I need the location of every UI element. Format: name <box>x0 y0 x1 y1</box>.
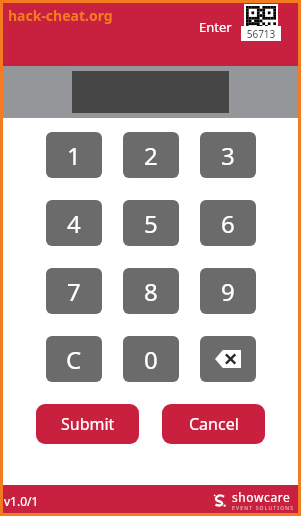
button[interactable]: Backspace <box>200 336 256 382</box>
staticText: Enter <box>199 18 232 36</box>
staticText: C <box>66 343 82 376</box>
button[interactable]: 1 <box>46 132 102 178</box>
staticText: 8 <box>144 275 158 308</box>
staticText: v1.0/1 <box>4 493 39 509</box>
button[interactable]: 3 <box>200 132 256 178</box>
button[interactable]: 8 <box>123 268 179 314</box>
button[interactable]: 9 <box>200 268 256 314</box>
staticText: 3 <box>221 139 235 172</box>
button[interactable]: 4 <box>46 200 102 246</box>
staticText: 6 <box>221 207 235 240</box>
staticText: 0 <box>144 343 158 376</box>
staticText: 4 <box>67 207 81 240</box>
staticText: 7 <box>67 275 81 308</box>
button[interactable]: 5 <box>123 200 179 246</box>
button[interactable]: Submit <box>36 404 139 444</box>
button[interactable]: Cancel <box>162 404 265 444</box>
button[interactable]: 6 <box>200 200 256 246</box>
staticText: 9 <box>221 275 235 308</box>
staticText: 2 <box>144 139 158 172</box>
staticText: 5 <box>144 207 158 240</box>
button[interactable]: 7 <box>46 268 102 314</box>
staticText: showcare <box>232 489 291 505</box>
staticText: EVENT SOLUTIONS <box>232 505 295 512</box>
staticText: 56713 <box>241 27 281 41</box>
button[interactable]: C <box>46 336 102 382</box>
button[interactable]: 2 <box>123 132 179 178</box>
button[interactable]: 0 <box>123 336 179 382</box>
staticText: Cancel <box>189 413 239 435</box>
staticText: hack-cheat.org <box>8 6 113 25</box>
staticText: 1 <box>67 139 81 172</box>
staticText: Submit <box>61 413 115 435</box>
